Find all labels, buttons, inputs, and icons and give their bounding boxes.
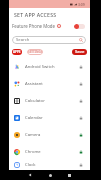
button[interactable]: Chrome xyxy=(9,143,90,160)
staticText: Calendar xyxy=(25,115,43,121)
button[interactable]: APPS xyxy=(12,49,22,55)
staticText: Feature Phone Mode xyxy=(12,23,56,29)
button[interactable]: Feature Phone Mode toggle xyxy=(74,24,85,29)
staticText: Chrome xyxy=(25,149,41,155)
button[interactable]: SETTINGS xyxy=(27,49,43,55)
staticText: SET APP ACCESS xyxy=(14,11,57,18)
button[interactable]: Calendar xyxy=(9,109,90,126)
button[interactable]: Assistant xyxy=(9,75,90,92)
staticText: Camera xyxy=(25,132,41,138)
staticText: SETTINGS xyxy=(28,50,43,54)
button[interactable]: Search xyxy=(12,36,86,44)
staticText: Calculator xyxy=(25,98,45,104)
button[interactable]: Back xyxy=(25,170,35,180)
button[interactable]: Calculator xyxy=(9,92,90,109)
staticText: Android Switch xyxy=(25,64,55,70)
staticText: APPS xyxy=(13,50,21,54)
staticText: Clock xyxy=(25,162,36,168)
button[interactable]: Home xyxy=(45,170,55,180)
button[interactable]: Save xyxy=(72,49,87,55)
button[interactable]: Camera xyxy=(9,126,90,143)
staticText: 3:09 xyxy=(78,2,85,7)
button[interactable]: Clock xyxy=(9,160,90,170)
staticText: Assistant xyxy=(25,81,43,87)
button[interactable]: Recents xyxy=(64,170,74,180)
button[interactable]: Android Switch xyxy=(9,58,90,75)
staticText: Search xyxy=(16,37,30,43)
staticText: Save xyxy=(75,49,85,55)
